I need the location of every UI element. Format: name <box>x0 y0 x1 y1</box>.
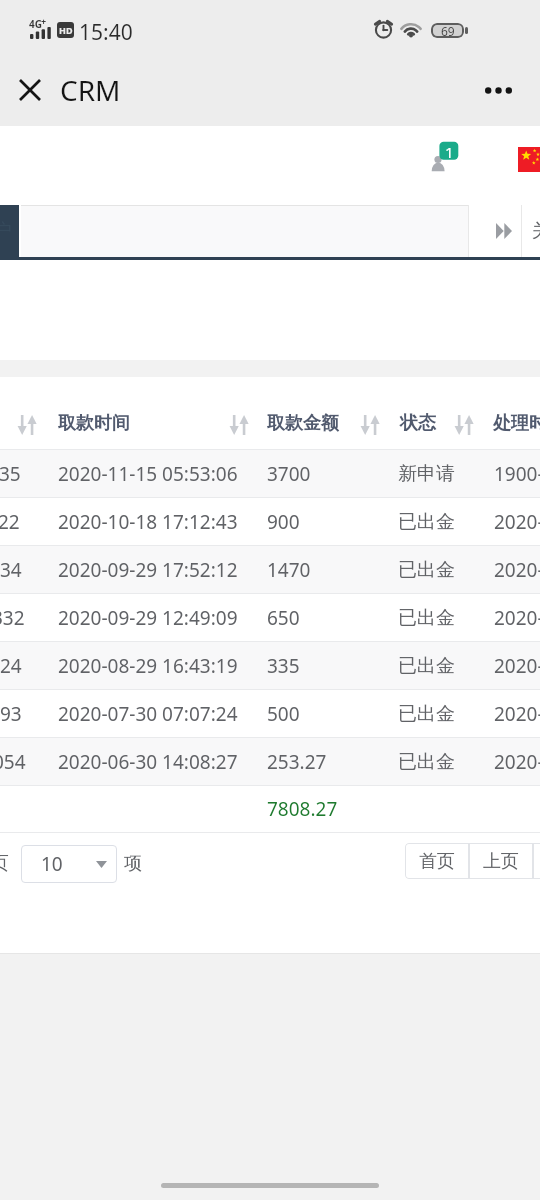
staticText: 054 <box>0 749 26 775</box>
button[interactable]: Tab <box>522 205 540 257</box>
staticText: + <box>41 15 47 27</box>
button[interactable]: 054 <box>0 738 540 786</box>
staticText: 35 <box>0 461 21 487</box>
button[interactable]: 34 <box>0 546 540 594</box>
staticText: 4G <box>29 17 42 31</box>
button[interactable]: Page size 10 <box>21 845 117 883</box>
button[interactable]: 93 <box>0 690 540 738</box>
staticText: 69 <box>441 23 455 38</box>
staticText: CRM <box>60 71 121 109</box>
staticText: 2020- <box>494 653 540 679</box>
staticText: 上页 <box>483 850 519 873</box>
staticText: 已出金 <box>398 654 455 678</box>
staticText: 2020-07-30 07:07:24 <box>58 701 238 727</box>
staticText: 新申请 <box>398 462 455 486</box>
staticText: 项 <box>124 852 142 875</box>
staticText: 2020- <box>494 605 540 631</box>
staticText: HD <box>59 24 73 36</box>
staticText: 2020- <box>494 749 540 775</box>
staticText: 34 <box>0 557 22 583</box>
staticText: 7808.27 <box>267 796 338 822</box>
button[interactable]: 上页 <box>469 843 533 879</box>
button[interactable]: 35 <box>0 450 540 498</box>
staticText: 2020-09-29 17:52:12 <box>58 557 238 583</box>
button[interactable]: 22 <box>0 498 540 546</box>
staticText: 2020-06-30 14:08:27 <box>58 749 238 775</box>
staticText: 332 <box>0 605 25 631</box>
staticText: 2020- <box>494 509 540 535</box>
staticText: 已出金 <box>398 606 455 630</box>
staticText: 状态 <box>400 412 436 435</box>
staticText: 2020- <box>494 701 540 727</box>
button[interactable]: 332 <box>0 594 540 642</box>
staticText: 已出金 <box>398 510 455 534</box>
staticText: 已出金 <box>398 702 455 726</box>
staticText: 2020-11-15 05:53:06 <box>58 461 238 487</box>
staticText: 已出金 <box>398 558 455 582</box>
button[interactable]: Tab <box>21 205 468 257</box>
staticText: 关 <box>532 219 540 243</box>
staticText: 900 <box>267 509 300 535</box>
staticText: 22 <box>0 509 20 535</box>
staticText: 首页 <box>419 850 455 873</box>
button[interactable]: 24 <box>0 642 540 690</box>
staticText: 已出金 <box>398 750 455 774</box>
button[interactable]: Close <box>8 68 52 112</box>
staticText: 1470 <box>267 557 311 583</box>
staticText: 处理时 <box>493 412 540 435</box>
staticText: 2020-08-29 16:43:19 <box>58 653 238 679</box>
button[interactable]: 首页 <box>405 843 469 879</box>
button[interactable]: More options <box>471 67 525 121</box>
staticText: 2020- <box>494 557 540 583</box>
staticText: 1900- <box>494 461 540 487</box>
staticText: 2020-10-18 17:12:43 <box>58 509 238 535</box>
button[interactable]: Next tabs <box>469 205 521 257</box>
staticText: 650 <box>267 605 300 631</box>
staticText: 3700 <box>267 461 311 487</box>
staticText: 2020-09-29 12:49:09 <box>58 605 238 631</box>
staticText: 500 <box>267 701 300 727</box>
staticText: 取款时间 <box>58 412 130 435</box>
staticText: 取款金额 <box>267 412 339 435</box>
staticText: 24 <box>0 653 22 679</box>
button[interactable]: Account <box>428 138 464 176</box>
staticText: 335 <box>267 653 300 679</box>
staticText: 93 <box>0 701 22 727</box>
staticText: 页 <box>0 852 9 875</box>
button[interactable]: 1 <box>533 843 540 879</box>
staticText: 10 <box>41 851 63 877</box>
staticText: 15:40 <box>79 18 133 47</box>
staticText: 253.27 <box>267 749 327 775</box>
staticText: 1 <box>445 142 454 162</box>
